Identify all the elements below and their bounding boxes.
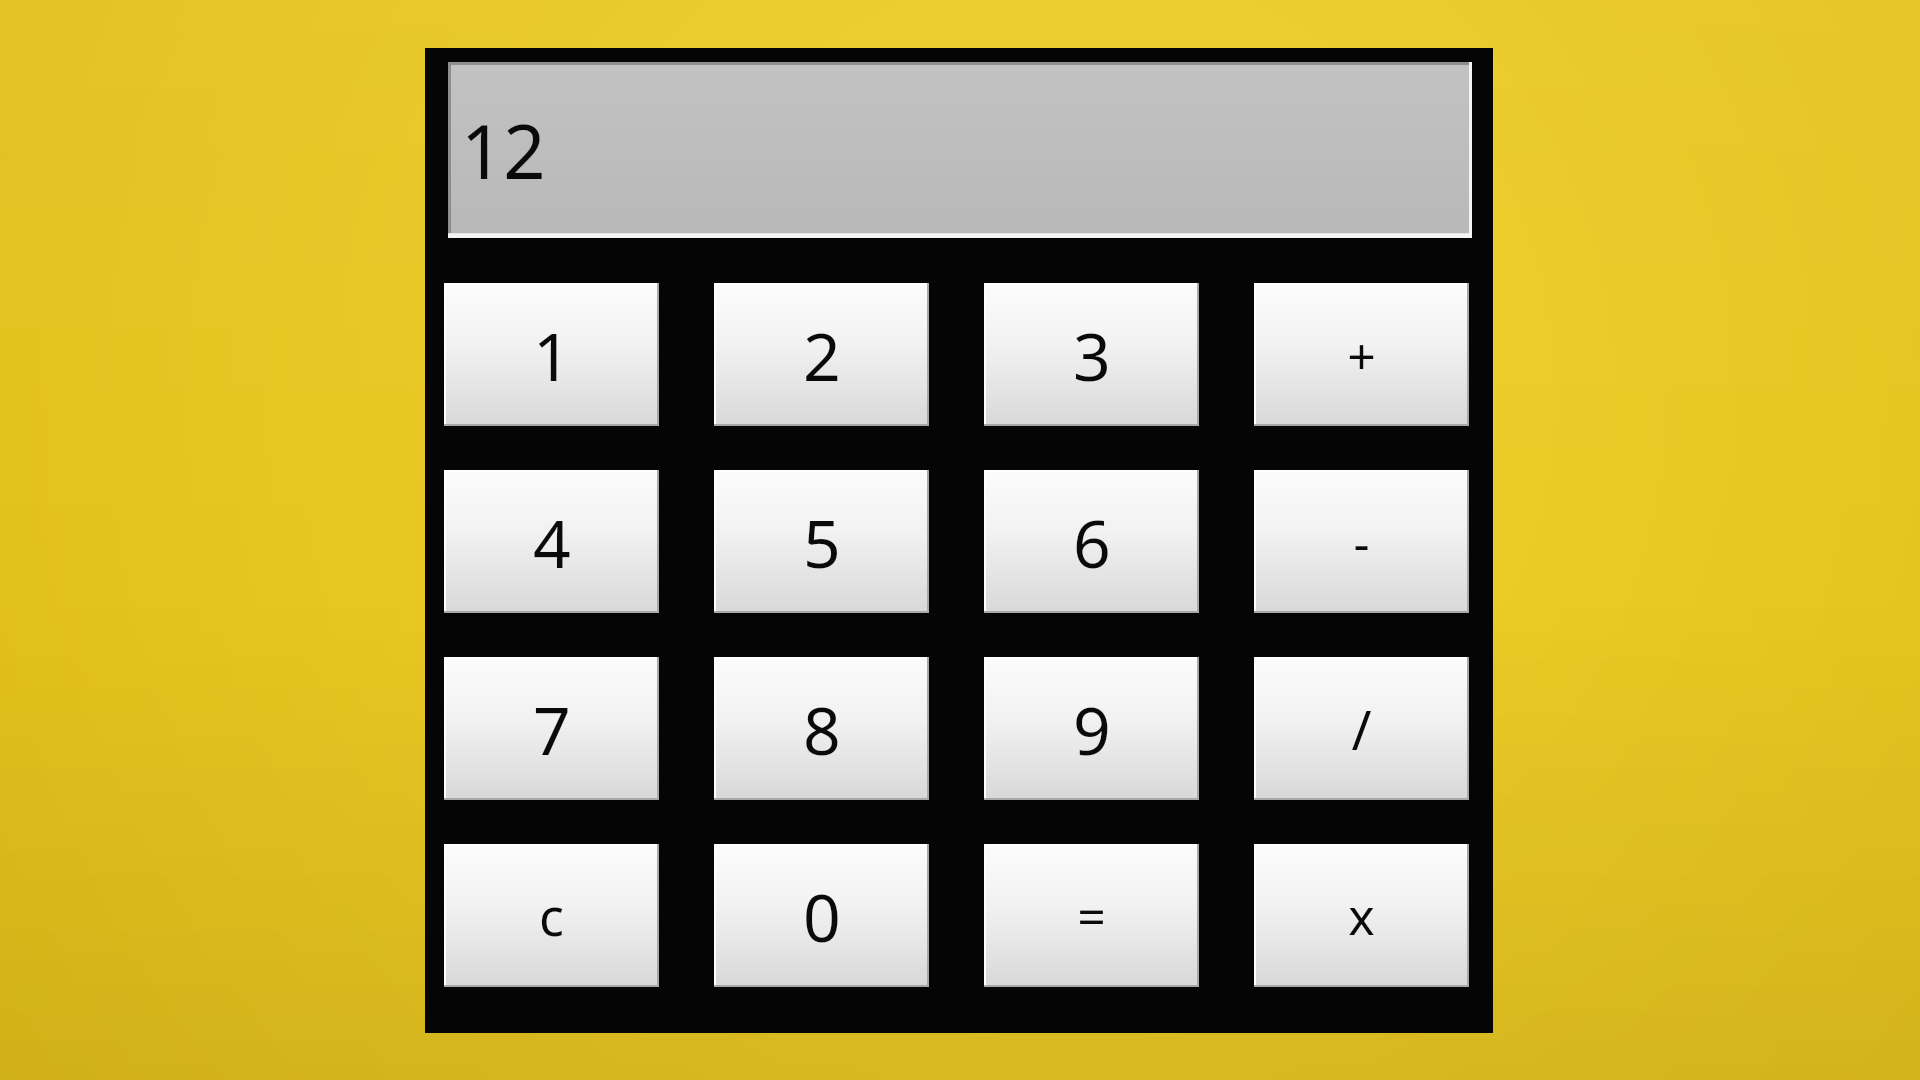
staticText: 2: [803, 310, 841, 400]
staticText: /: [1351, 692, 1372, 766]
staticText: 9: [1073, 684, 1111, 774]
staticText: 6: [1073, 497, 1111, 587]
staticText: 5: [803, 497, 841, 587]
button[interactable]: Subtract: [1254, 470, 1469, 613]
staticText: 12: [461, 100, 546, 201]
staticText: 4: [533, 497, 571, 587]
staticText: x: [1348, 882, 1375, 950]
button[interactable]: 2: [714, 283, 929, 426]
button[interactable]: 5: [714, 470, 929, 613]
button[interactable]: 9: [984, 657, 1199, 800]
staticText: 3: [1073, 310, 1111, 400]
button[interactable]: 1: [444, 283, 659, 426]
staticText: =: [1077, 882, 1106, 950]
staticText: 0: [803, 871, 841, 961]
button[interactable]: 3: [984, 283, 1199, 426]
staticText: 1: [533, 310, 571, 400]
button[interactable]: 0: [714, 844, 929, 987]
button[interactable]: 6: [984, 470, 1199, 613]
staticText: c: [539, 880, 564, 951]
button[interactable]: Divide: [1254, 657, 1469, 800]
button[interactable]: Add: [1254, 283, 1469, 426]
staticText: -: [1353, 508, 1370, 576]
button[interactable]: Equals: [984, 844, 1199, 987]
staticText: 7: [533, 684, 571, 774]
button[interactable]: Multiply: [1254, 844, 1469, 987]
button[interactable]: 7: [444, 657, 659, 800]
staticText: +: [1347, 321, 1376, 389]
button[interactable]: Clear: [444, 844, 659, 987]
button[interactable]: 8: [714, 657, 929, 800]
button[interactable]: 4: [444, 470, 659, 613]
staticText: 8: [803, 684, 841, 774]
